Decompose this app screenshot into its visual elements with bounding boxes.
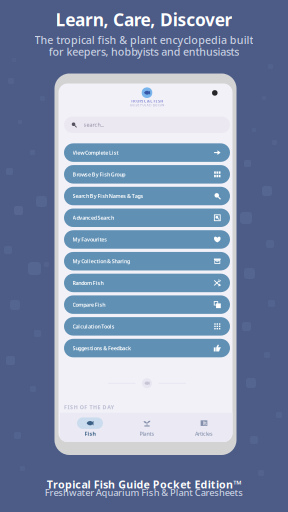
staticText: View Complete List: [73, 149, 119, 156]
staticText: TROPICAL FISH: [131, 98, 163, 104]
staticText: Advanced Search: [73, 214, 114, 221]
button[interactable]: Articles: [176, 417, 232, 438]
button[interactable]: Suggestions & Feedback: [64, 339, 230, 357]
staticText: My Collection & Sharing: [73, 258, 130, 265]
button[interactable]: My Favourites: [64, 230, 230, 249]
staticText: FISH OF THE DAY: [64, 404, 114, 411]
button[interactable]: Search By Fish Names & Tags: [64, 187, 230, 205]
staticText: Suggestions & Feedback: [73, 344, 131, 352]
staticText: Tropical Fish Guide Pocket Edition™: [47, 477, 241, 491]
button[interactable]: Random Fish: [64, 274, 230, 292]
staticText: My Favourites: [73, 236, 107, 243]
staticText: Freshwater Aquarium Fish & Plant Careshe…: [45, 486, 243, 499]
staticText: Articles: [195, 430, 213, 437]
button[interactable]: Advanced Search: [64, 208, 230, 227]
button[interactable]: Compare Fish: [64, 295, 230, 314]
button[interactable]: Calculation Tools: [64, 317, 230, 336]
button[interactable]: My Collection & Sharing: [64, 252, 230, 270]
staticText: Compare Fish: [73, 301, 105, 308]
button[interactable]: View Complete List: [64, 143, 230, 162]
staticText: Random Fish: [73, 279, 103, 286]
staticText: Fish: [84, 430, 95, 437]
button[interactable]: Browse By Fish Group: [64, 165, 230, 184]
button[interactable]: Fish: [62, 417, 118, 438]
staticText: Calculation Tools: [73, 323, 115, 330]
staticText: for keepers, hobbyists and enthusiasts: [49, 44, 239, 59]
button[interactable]: search...: [64, 117, 230, 133]
staticText: Learn, Care, Discover: [55, 8, 232, 31]
button[interactable]: Plants: [119, 417, 175, 438]
staticText: The tropical fish & plant encyclopedia b…: [34, 33, 253, 47]
staticText: Search By Fish Names & Tags: [73, 192, 143, 200]
staticText: Plants: [139, 430, 154, 437]
staticText: search...: [84, 121, 104, 128]
staticText: GUIDE POCKET EDITION: [130, 103, 164, 107]
staticText: Browse By Fish Group: [73, 171, 125, 178]
